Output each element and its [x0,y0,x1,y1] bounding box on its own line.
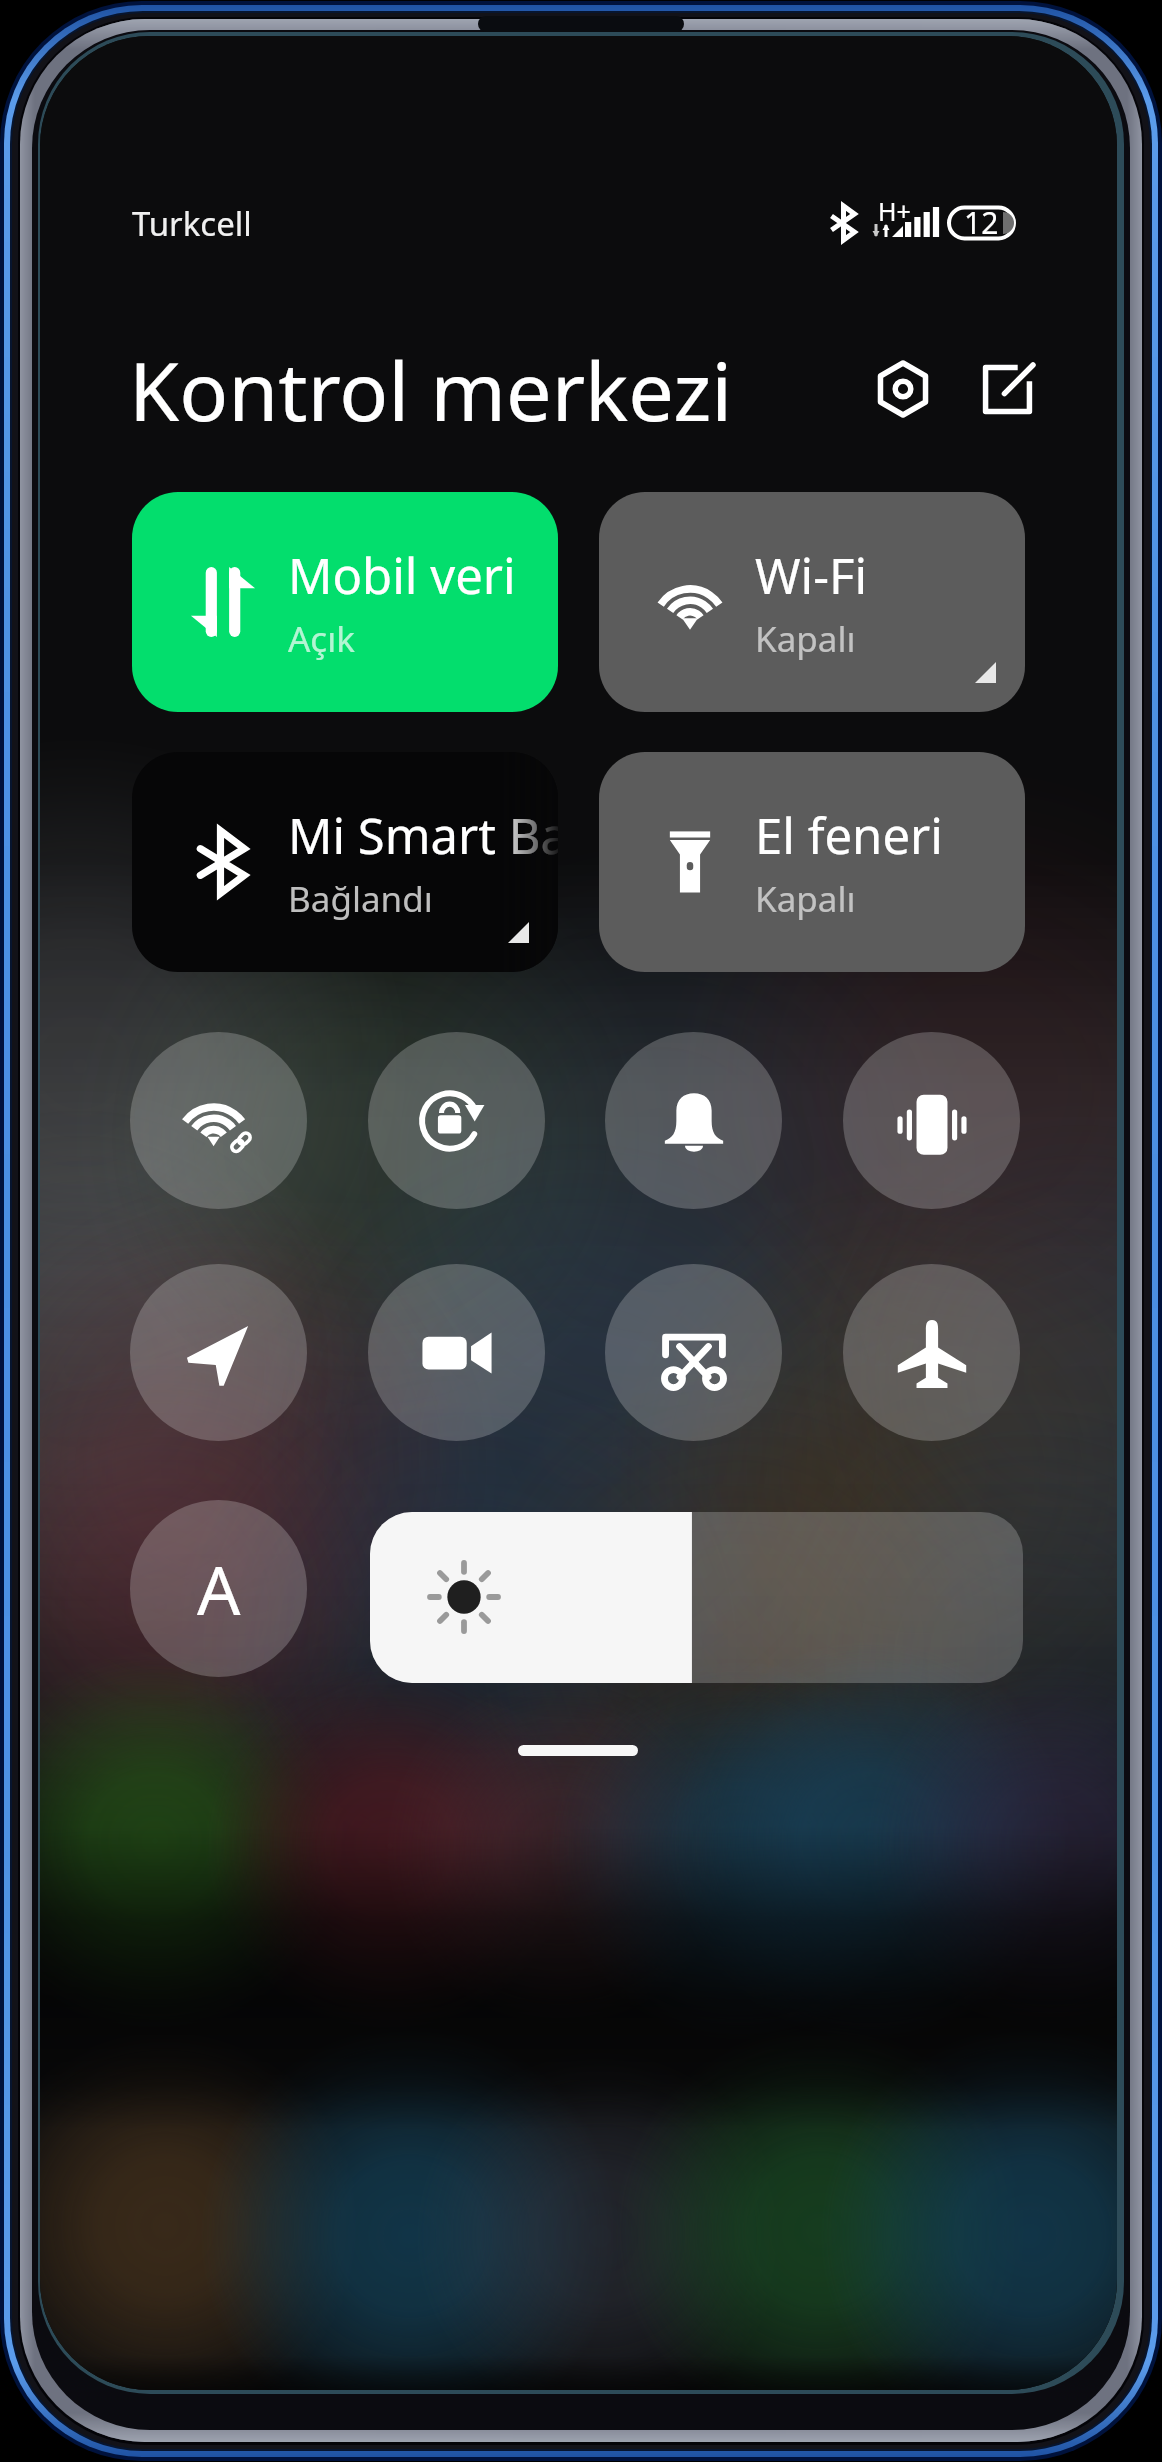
button[interactable]: Brightness [370,1512,1023,1683]
staticText: Açık [288,615,355,663]
button[interactable]: Mobil veri [132,492,558,712]
staticText: A [197,1542,241,1635]
button[interactable]: Airplane mode [843,1264,1020,1441]
staticText: Wi-Fi [755,542,868,609]
button[interactable]: Vibrate [843,1032,1020,1209]
button[interactable]: Screen recorder [368,1264,545,1441]
button[interactable]: Control center settings [857,343,949,435]
staticText: El feneri [755,802,943,869]
staticText: Mobil veri [288,542,516,609]
button[interactable]: El feneri [599,752,1025,972]
button[interactable]: Automatic brightness [130,1500,307,1677]
button[interactable]: Location [130,1264,307,1441]
staticText: Kontrol merkezi [129,334,733,444]
button[interactable]: Edit [961,343,1053,435]
button[interactable]: Mi Smart Ba [132,752,558,972]
staticText: Kapalı [755,615,856,663]
staticText: 12 [964,202,999,243]
button[interactable]: Screenshot [605,1264,782,1441]
staticText: Kapalı [755,875,856,923]
button[interactable]: Personal hotspot [130,1032,307,1209]
staticText: Turkcell [132,201,252,246]
staticText: Bağlandı [288,875,433,923]
button[interactable]: Ringer [605,1032,782,1209]
staticText: H+ [878,194,911,228]
button[interactable]: Auto rotate [368,1032,545,1209]
staticText: Mi Smart Ba [288,802,558,869]
button[interactable]: Wi-Fi [599,492,1025,712]
